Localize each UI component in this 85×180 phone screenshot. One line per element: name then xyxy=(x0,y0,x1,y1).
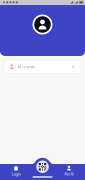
button[interactable]: Perfil xyxy=(53,165,85,176)
button[interactable]: Mi cuenta xyxy=(4,60,81,73)
staticText: Perfil xyxy=(64,171,73,176)
button[interactable]: Scan QR code xyxy=(36,160,49,173)
staticText: Login xyxy=(11,171,20,176)
button[interactable]: Login xyxy=(0,165,32,176)
staticText: Mi cuenta xyxy=(17,64,34,69)
